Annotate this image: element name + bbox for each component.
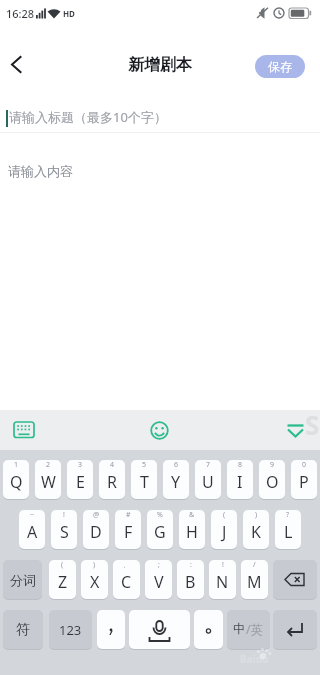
button[interactable]: 3 <box>67 460 93 499</box>
button[interactable]: ( <box>49 560 76 599</box>
staticText: 请输入标题（最多10个字） <box>9 108 167 126</box>
staticText: Baidu <box>240 652 269 666</box>
staticText: ) <box>255 510 258 520</box>
staticText: R <box>107 471 117 493</box>
button[interactable]: 0 <box>291 460 317 499</box>
staticText: S <box>60 521 69 543</box>
button[interactable]: ; <box>145 560 172 599</box>
button[interactable]: ~ <box>19 510 45 549</box>
staticText: ( <box>61 560 64 570</box>
staticText: 中 <box>233 621 246 637</box>
staticText: 1 <box>14 460 19 470</box>
staticText: J <box>222 521 227 543</box>
button[interactable]: @ <box>83 510 109 549</box>
staticText: 8 <box>238 460 243 470</box>
staticText: E <box>76 471 85 493</box>
button[interactable]: ( <box>211 510 237 549</box>
staticText: 123 <box>59 621 82 639</box>
staticText: Z <box>58 571 68 593</box>
staticText: 7 <box>206 460 211 470</box>
staticText: K <box>251 521 261 543</box>
button[interactable] <box>0 96 320 133</box>
staticText: S <box>305 407 320 442</box>
button[interactable]: 分词 <box>3 560 42 599</box>
button[interactable]: 、 <box>113 560 140 599</box>
staticText: A <box>27 521 38 543</box>
staticText: I <box>237 471 243 493</box>
button[interactable] <box>280 415 312 445</box>
button[interactable] <box>273 610 317 649</box>
staticText: H <box>186 521 198 543</box>
staticText: 2 <box>46 460 51 470</box>
staticText: # <box>126 510 131 520</box>
staticText: X <box>90 571 100 593</box>
staticText: HD <box>63 8 75 19</box>
staticText: ( <box>223 510 226 520</box>
button[interactable]: 2 <box>35 460 61 499</box>
staticText: % <box>157 510 163 520</box>
staticText: /英 <box>246 621 264 638</box>
button[interactable]: ) <box>243 510 269 549</box>
staticText: : <box>190 560 192 570</box>
button[interactable]: 保存 <box>255 55 305 78</box>
staticText: Y <box>171 471 181 493</box>
staticText: 新增剧本 <box>0 55 320 75</box>
staticText: 符 <box>16 621 30 639</box>
button[interactable] <box>273 560 317 599</box>
button[interactable]: 9 <box>259 460 285 499</box>
button[interactable]: % <box>147 510 173 549</box>
staticText: 、 <box>123 560 130 569</box>
button[interactable]: 1 <box>3 460 29 499</box>
staticText: & <box>189 510 195 520</box>
button[interactable] <box>0 133 320 410</box>
staticText: 请输入内容 <box>8 163 73 179</box>
staticText: ~ <box>30 510 35 520</box>
button[interactable] <box>129 610 190 649</box>
button[interactable]: ) <box>81 560 108 599</box>
button[interactable]: : <box>177 560 204 599</box>
button[interactable] <box>8 414 40 444</box>
staticText: 4 <box>110 460 115 470</box>
button[interactable]: / <box>241 560 268 599</box>
button[interactable] <box>194 610 223 649</box>
button[interactable]: 中 <box>227 610 270 649</box>
button[interactable] <box>4 50 32 78</box>
staticText: 6 <box>174 460 179 470</box>
button[interactable]: 4 <box>99 460 125 499</box>
button[interactable]: 8 <box>227 460 253 499</box>
button[interactable]: & <box>179 510 205 549</box>
button[interactable]: ! <box>51 510 77 549</box>
button[interactable]: 6 <box>163 460 189 499</box>
staticText: ; <box>158 560 160 570</box>
staticText: W <box>41 471 56 493</box>
staticText: 保存 <box>268 59 292 74</box>
button[interactable]: 123 <box>49 610 92 649</box>
button[interactable]: 5 <box>131 460 157 499</box>
button[interactable] <box>144 415 175 446</box>
staticText: ! <box>63 510 65 520</box>
staticText: M <box>247 571 262 593</box>
staticText: 5 <box>142 460 147 470</box>
staticText: V <box>154 571 164 593</box>
staticText: O <box>266 471 279 493</box>
staticText: C <box>121 571 132 593</box>
staticText: T <box>140 471 149 493</box>
staticText: L <box>284 521 293 543</box>
button[interactable]: 符 <box>3 610 43 649</box>
staticText: B <box>185 571 196 593</box>
staticText: / <box>253 560 256 570</box>
staticText: 分词 <box>10 572 36 588</box>
staticText: ) <box>93 560 96 570</box>
button[interactable] <box>97 610 125 649</box>
staticText: U <box>202 471 214 493</box>
staticText: F <box>124 521 133 543</box>
button[interactable]: 7 <box>195 460 221 499</box>
staticText: @ <box>93 510 100 520</box>
staticText: 3 <box>78 460 83 470</box>
button[interactable]: # <box>115 510 141 549</box>
staticText: G <box>154 521 166 543</box>
button[interactable]: ! <box>209 560 236 599</box>
staticText: 0 <box>302 460 307 470</box>
staticText: 16:28 <box>6 6 35 21</box>
button[interactable]: ? <box>275 510 301 549</box>
